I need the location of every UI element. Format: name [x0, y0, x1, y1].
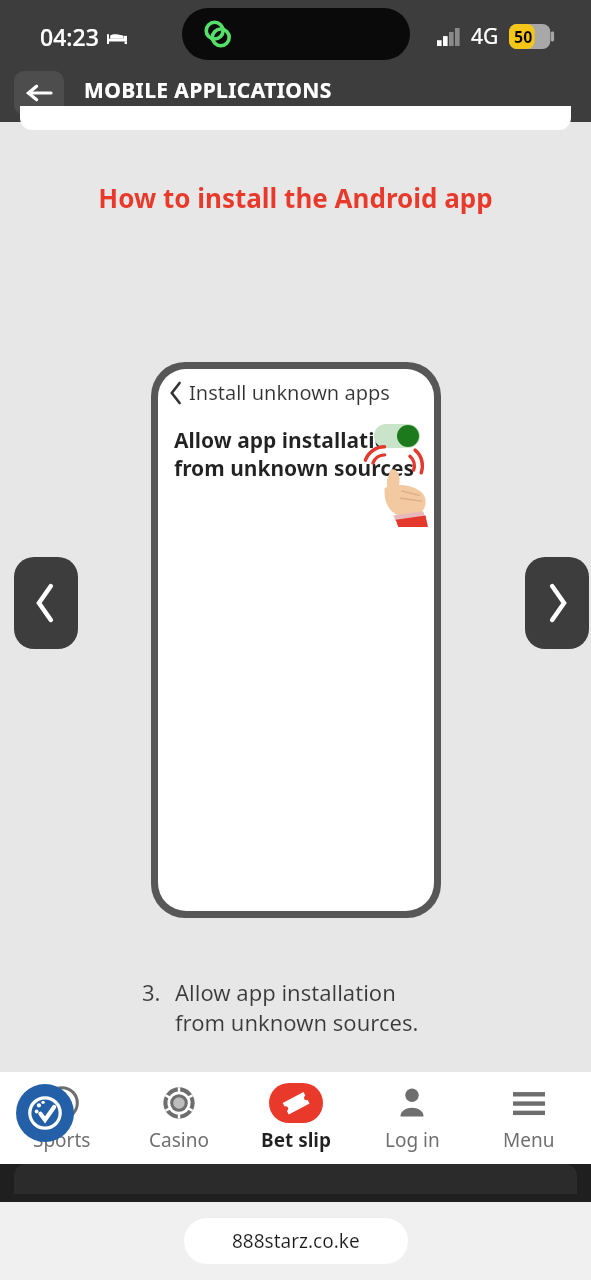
staticText: Menu: [503, 1127, 555, 1153]
button[interactable]: Back: [14, 71, 64, 115]
staticText: Allow app installation from unknown sour…: [174, 426, 415, 482]
staticText: Log in: [385, 1127, 440, 1153]
staticText: 50: [514, 26, 533, 48]
button[interactable]: Cookie settings: [16, 1084, 74, 1142]
staticText: Bet slip: [261, 1127, 332, 1153]
button[interactable]: Casino: [124, 1077, 234, 1159]
staticText: How to install the Android app: [98, 180, 493, 215]
button[interactable]: Next: [525, 557, 589, 649]
button[interactable]: Allow toggle: [374, 424, 420, 448]
button[interactable]: Sports: [7, 1077, 117, 1159]
button[interactable]: Previous: [14, 557, 78, 649]
staticText: Allow app installation from unknown sour…: [175, 977, 419, 1037]
staticText: Casino: [149, 1127, 209, 1153]
staticText: Sports: [33, 1127, 91, 1153]
staticText: 3.: [142, 977, 161, 1007]
button[interactable]: Log in: [357, 1077, 467, 1159]
button[interactable]: 888starz.co.ke: [184, 1218, 408, 1264]
staticText: 04:23: [40, 21, 99, 52]
staticText: 4G: [471, 22, 499, 51]
staticText: 888starz.co.ke: [232, 1228, 360, 1254]
staticText: MOBILE APPLICATIONS: [84, 76, 332, 105]
staticText: Install unknown apps: [189, 379, 390, 406]
button[interactable]: Menu: [474, 1077, 584, 1159]
button[interactable]: Bet slip: [241, 1077, 351, 1159]
